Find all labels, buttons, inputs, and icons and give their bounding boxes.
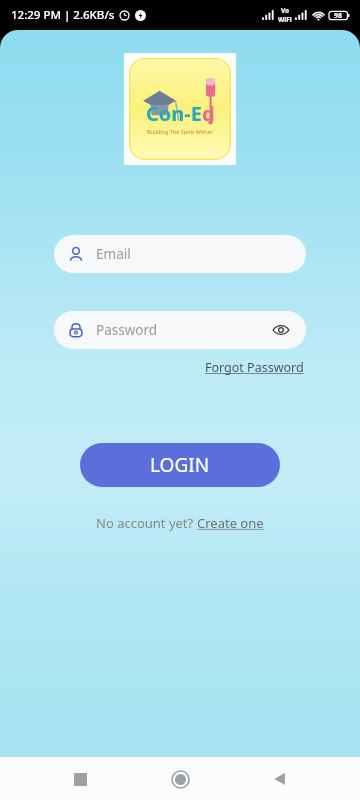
button[interactable]: Recents	[60, 759, 100, 799]
staticText: 98	[334, 11, 343, 21]
staticText: WiFi	[278, 15, 292, 24]
button[interactable]: Email	[54, 235, 306, 273]
staticText: LOGIN	[150, 452, 210, 478]
staticText: 12:29 PM | 2.6KB/s	[11, 7, 115, 23]
button[interactable]: Home	[160, 759, 200, 799]
button[interactable]: Forgot Password	[203, 357, 306, 378]
staticText: Vo	[281, 6, 290, 15]
button[interactable]: Show password	[270, 319, 292, 341]
button[interactable]: Password	[54, 311, 306, 349]
button[interactable]: Create one	[197, 514, 264, 532]
staticText: Building The Spirit Within	[147, 128, 213, 135]
staticText: Forgot Password	[205, 359, 304, 376]
staticText: Password	[96, 321, 270, 339]
button[interactable]: LOGIN	[80, 443, 280, 487]
staticText: Con-E	[146, 100, 202, 127]
staticText: d	[202, 100, 215, 127]
staticText: Email	[96, 245, 292, 263]
staticText: No account yet?	[96, 514, 197, 532]
staticText: Create one	[197, 514, 264, 532]
button[interactable]: Back	[260, 759, 300, 799]
